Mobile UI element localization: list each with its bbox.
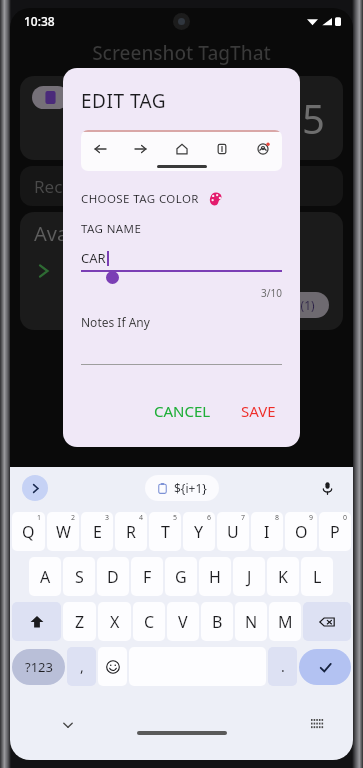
staticText: Screenshot TagThat bbox=[10, 40, 353, 66]
button[interactable]: H bbox=[199, 557, 231, 596]
button[interactable]: ${i+1} bbox=[157, 480, 207, 496]
staticText: O bbox=[295, 521, 308, 543]
staticText: ?123 bbox=[25, 658, 53, 676]
button[interactable]: Account bbox=[252, 138, 274, 160]
staticText: E bbox=[93, 521, 102, 543]
button[interactable]: S bbox=[63, 557, 95, 596]
staticText: T bbox=[161, 521, 170, 543]
staticText: 1 bbox=[37, 513, 42, 523]
button[interactable]: D bbox=[97, 557, 129, 596]
button[interactable]: Back bbox=[89, 138, 111, 160]
staticText: 5 bbox=[302, 91, 325, 145]
button[interactable]: Home bbox=[171, 138, 193, 160]
staticText: . bbox=[281, 657, 285, 676]
staticText: ${i+1} bbox=[174, 480, 207, 496]
staticText: N bbox=[245, 611, 258, 633]
staticText: U bbox=[227, 521, 239, 543]
button[interactable]: , bbox=[67, 647, 96, 686]
staticText: G bbox=[175, 566, 187, 588]
button[interactable]: V bbox=[167, 602, 199, 641]
button[interactable]: F bbox=[131, 557, 163, 596]
button[interactable]: . bbox=[268, 647, 297, 686]
staticText: 7 bbox=[241, 513, 246, 523]
staticText: Z bbox=[75, 611, 85, 633]
staticText: H bbox=[209, 566, 221, 588]
staticText: 2 bbox=[71, 513, 76, 523]
button[interactable]: Switch keyboard bbox=[307, 715, 327, 735]
staticText: A bbox=[40, 566, 51, 588]
button[interactable]: P bbox=[319, 512, 351, 551]
button[interactable]: Expand toolbar bbox=[22, 475, 48, 501]
button[interactable]: R (1) bbox=[290, 297, 315, 313]
staticText: I bbox=[264, 521, 270, 543]
staticText: F bbox=[143, 566, 152, 588]
staticText: 6 bbox=[207, 513, 212, 523]
staticText: R bbox=[126, 521, 136, 543]
button[interactable]: Forward bbox=[130, 138, 152, 160]
staticText: 0 bbox=[343, 513, 348, 523]
button[interactable]: Hide keyboard bbox=[58, 715, 78, 735]
staticText: K bbox=[278, 566, 288, 588]
staticText: CAR bbox=[81, 249, 106, 267]
staticText: 5 bbox=[173, 513, 178, 523]
button[interactable] bbox=[44, 91, 57, 104]
button[interactable]: N bbox=[235, 602, 267, 641]
staticText: CANCEL bbox=[154, 401, 211, 421]
staticText: R (1) bbox=[290, 297, 315, 313]
staticText: L bbox=[313, 566, 322, 588]
button[interactable]: G bbox=[165, 557, 197, 596]
staticText: 10:38 bbox=[24, 13, 55, 29]
staticText: P bbox=[330, 521, 340, 543]
button[interactable]: L bbox=[301, 557, 333, 596]
button[interactable]: X bbox=[98, 602, 131, 641]
staticText: , bbox=[80, 657, 84, 676]
button[interactable]: Shift bbox=[12, 602, 61, 641]
staticText: SAVE bbox=[241, 401, 276, 421]
staticText: CHOOSE TAG COLOR bbox=[81, 191, 199, 207]
button[interactable]: R bbox=[115, 512, 147, 551]
staticText: M bbox=[278, 611, 293, 633]
button[interactable]: I bbox=[251, 512, 283, 551]
button[interactable]: Backspace bbox=[303, 602, 351, 641]
button[interactable]: Enter bbox=[299, 649, 351, 685]
staticText: 3 bbox=[105, 513, 110, 523]
button[interactable]: Voice input bbox=[315, 476, 339, 500]
button[interactable]: T bbox=[149, 512, 181, 551]
button[interactable]: W bbox=[47, 512, 79, 551]
button[interactable]: Y bbox=[183, 512, 215, 551]
button[interactable]: Emoji bbox=[98, 647, 127, 686]
staticText: D bbox=[107, 566, 119, 588]
button[interactable]: Tabs bbox=[211, 138, 233, 160]
button[interactable]: O bbox=[285, 512, 317, 551]
button[interactable]: B bbox=[201, 602, 233, 641]
button[interactable]: ?123 bbox=[12, 649, 65, 685]
button[interactable]: SAVE bbox=[235, 397, 282, 425]
staticText: C bbox=[144, 611, 155, 633]
staticText: V bbox=[178, 611, 188, 633]
staticText: EDIT TAG bbox=[81, 88, 167, 114]
button[interactable]: Z bbox=[63, 602, 96, 641]
staticText: 9 bbox=[309, 513, 314, 523]
staticText: J bbox=[247, 566, 252, 588]
staticText: 3/10 bbox=[81, 286, 282, 300]
button[interactable]: K bbox=[267, 557, 299, 596]
staticText: X bbox=[110, 611, 120, 633]
staticText: Y bbox=[194, 521, 204, 543]
button[interactable]: Q bbox=[12, 512, 45, 551]
button[interactable]: U bbox=[217, 512, 249, 551]
button[interactable]: Choose tag color bbox=[209, 192, 223, 206]
staticText: B bbox=[212, 611, 223, 633]
button[interactable]: M bbox=[269, 602, 301, 641]
staticText: S bbox=[75, 566, 84, 588]
button[interactable]: A bbox=[29, 557, 61, 596]
staticText: Q bbox=[22, 521, 35, 543]
button[interactable]: E bbox=[81, 512, 113, 551]
button[interactable]: CANCEL bbox=[148, 397, 217, 425]
staticText: Ava bbox=[34, 220, 69, 247]
button[interactable]: C bbox=[133, 602, 165, 641]
staticText: Notes If Any bbox=[81, 314, 150, 330]
button[interactable]: J bbox=[233, 557, 265, 596]
